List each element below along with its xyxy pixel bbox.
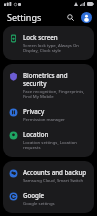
button[interactable]: Biometrics and security (3, 67, 94, 103)
staticText: Samsung Cloud, Smart Switch (23, 177, 84, 183)
button[interactable]: Privacy (3, 103, 94, 126)
staticText: Permission manager (23, 116, 65, 122)
button[interactable]: Lock screen (3, 29, 94, 57)
staticText: Location settings, Location requests (23, 139, 88, 150)
button[interactable]: Accounts and backup (3, 164, 94, 187)
staticText: Google settings (23, 200, 55, 206)
staticText: Location (23, 130, 49, 138)
staticText: Screen lock type, Always On Display, Clo… (23, 42, 88, 53)
staticText: Biometrics and security (23, 71, 88, 87)
staticText: Privacy (23, 107, 45, 115)
staticText: Accounts and backup (23, 168, 87, 176)
staticText: Face recognition, Fingerprints, Find My … (23, 88, 88, 99)
staticText: Settings (7, 11, 42, 23)
button[interactable]: Google (3, 187, 94, 210)
button[interactable]: Search settings (65, 12, 76, 23)
staticText: Lock screen (23, 33, 58, 41)
button[interactable]: Location (3, 126, 94, 154)
button[interactable]: Account profile (81, 12, 92, 23)
staticText: Google (23, 191, 45, 199)
